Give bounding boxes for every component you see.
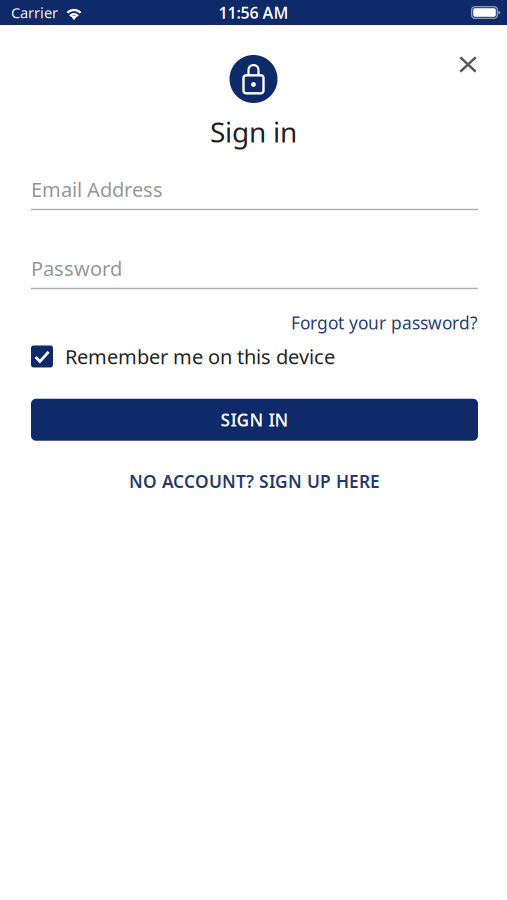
button[interactable]: SIGN IN (31, 399, 478, 441)
staticText: Email Address (31, 176, 163, 202)
staticText: Remember me on this device (65, 343, 335, 370)
staticText: Forgot your password? (291, 311, 478, 334)
staticText: NO ACCOUNT? SIGN UP HERE (129, 470, 380, 493)
staticText: SIGN IN (220, 408, 288, 431)
staticText: Sign in (210, 113, 297, 150)
button[interactable]: Forgot your password? (291, 307, 478, 338)
staticText: 11:56 AM (218, 2, 288, 23)
button[interactable]: Close (448, 45, 488, 84)
button[interactable]: Remember me on this device (31, 343, 335, 370)
staticText: Carrier (11, 3, 58, 22)
button[interactable]: Email Address (31, 178, 478, 210)
staticText: Password (31, 255, 122, 281)
button[interactable]: NO ACCOUNT? SIGN UP HERE (129, 464, 380, 499)
button[interactable]: Password (31, 257, 478, 289)
